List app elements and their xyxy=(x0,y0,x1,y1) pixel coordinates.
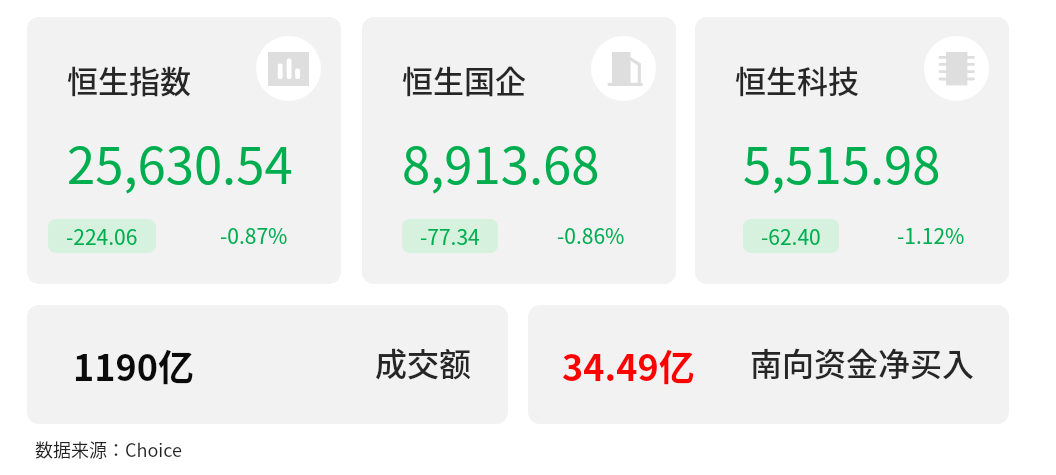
button[interactable]: 恒生科技 xyxy=(695,17,1009,284)
button[interactable]: 34.49亿 xyxy=(528,305,1009,424)
staticText: 恒生国企 xyxy=(402,57,526,102)
button[interactable]: -224.06 xyxy=(48,219,156,253)
staticText: 1190亿 xyxy=(73,339,194,391)
staticText: -224.06 xyxy=(66,221,138,251)
staticText: 34.49亿 xyxy=(562,339,695,391)
button[interactable]: 恒生科技 index xyxy=(924,36,989,101)
staticText: 南向资金净买入 xyxy=(750,339,975,385)
staticText: 数据来源：Choice xyxy=(35,436,182,462)
button[interactable]: 1190亿 xyxy=(27,305,508,424)
button[interactable]: 恒生国企 index xyxy=(591,36,656,101)
staticText: -0.87% xyxy=(220,220,288,250)
staticText: -62.40 xyxy=(761,221,821,251)
staticText: 恒生科技 xyxy=(735,57,859,102)
button[interactable]: 恒生国企 xyxy=(362,17,676,284)
staticText: -77.34 xyxy=(420,221,480,251)
staticText: 8,913.68 xyxy=(402,125,600,199)
staticText: -1.12% xyxy=(897,220,965,250)
staticText: 成交额 xyxy=(375,339,472,385)
staticText: -0.86% xyxy=(557,220,625,250)
button[interactable]: -62.40 xyxy=(743,219,839,253)
button[interactable]: 恒生指数 xyxy=(27,17,341,284)
staticText: 5,515.98 xyxy=(743,125,941,199)
button[interactable]: 恒生指数 chart xyxy=(256,36,321,101)
button[interactable]: -77.34 xyxy=(402,219,498,253)
staticText: 恒生指数 xyxy=(67,57,191,102)
staticText: 25,630.54 xyxy=(67,125,293,199)
